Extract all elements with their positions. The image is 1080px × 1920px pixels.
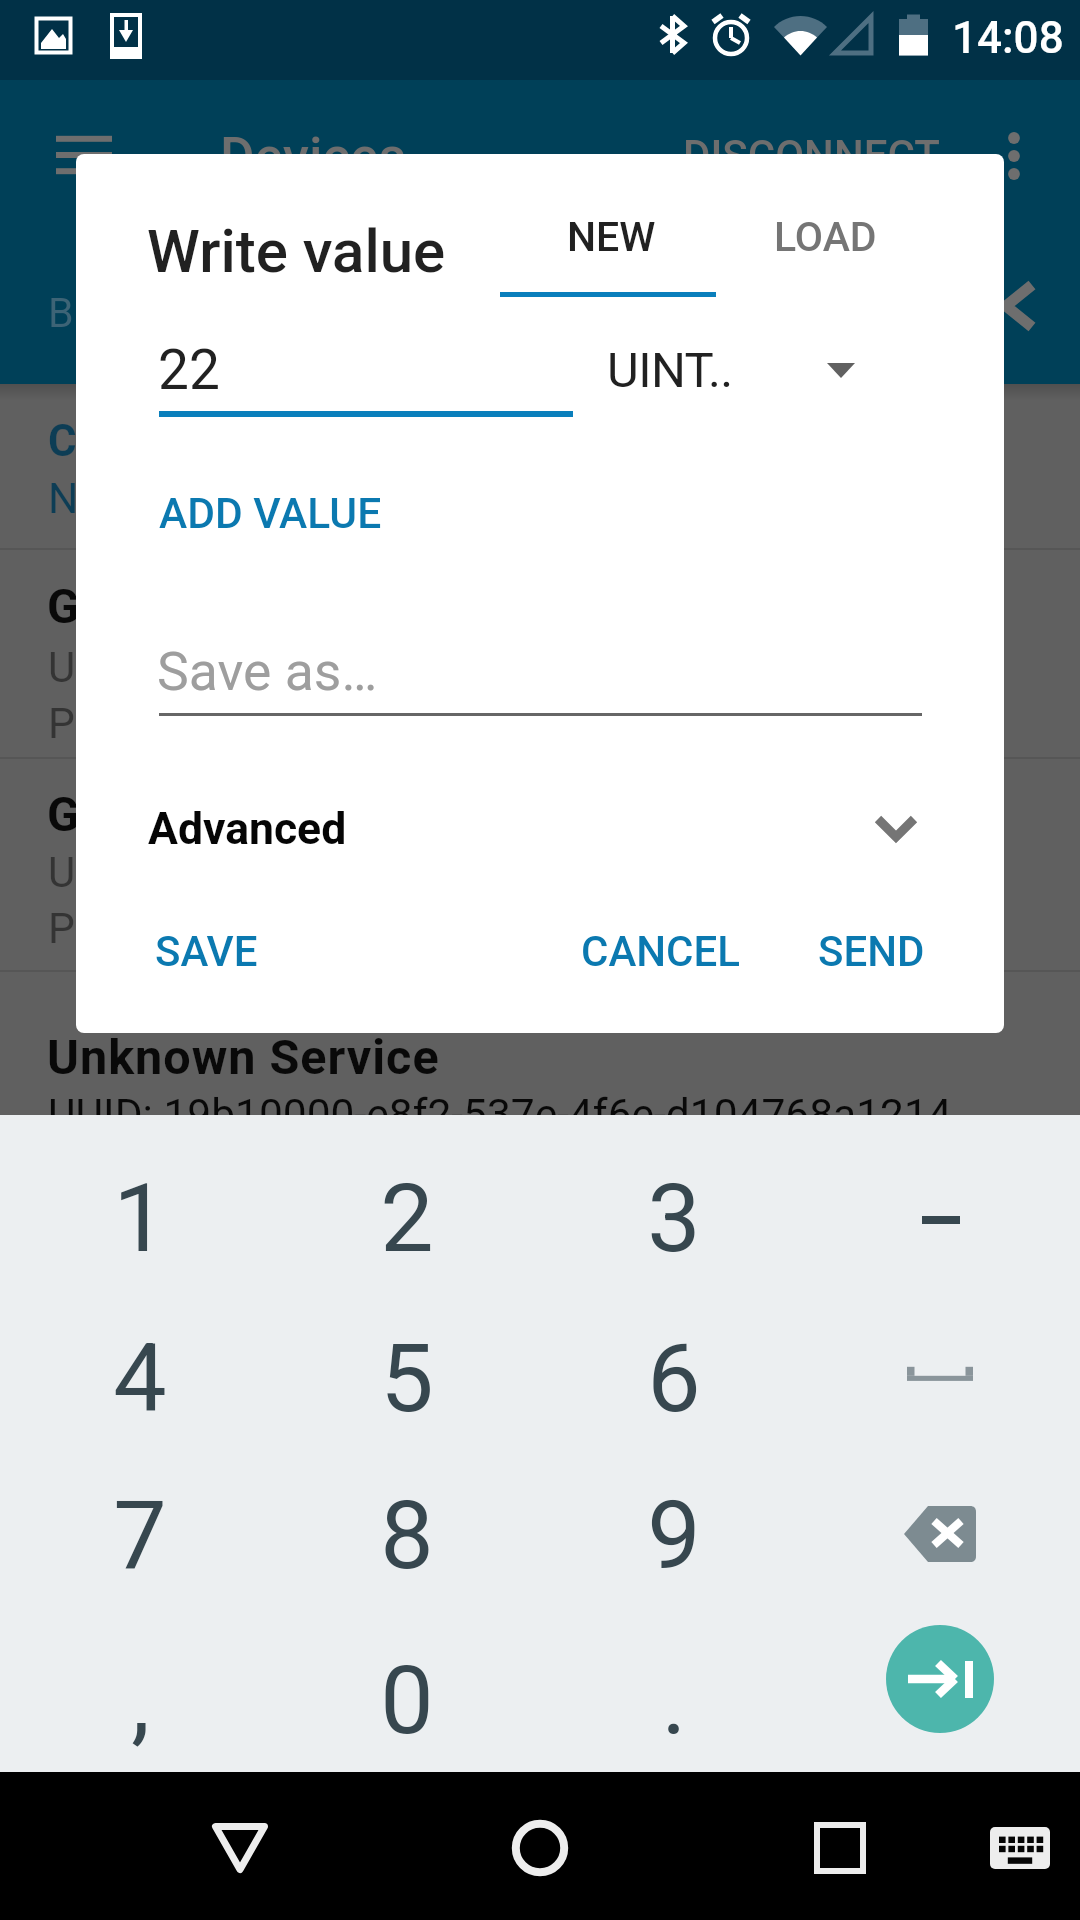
staticText: 9	[647, 1480, 701, 1591]
staticText: 1	[113, 1163, 167, 1274]
button[interactable]: LOAD	[717, 190, 933, 301]
button[interactable]: Generic Access	[0, 0, 349, 56]
button[interactable]: Advanced	[134, 790, 920, 872]
staticText: 0	[380, 1645, 434, 1756]
staticText: Save as…	[157, 640, 378, 703]
staticText: 2	[380, 1163, 434, 1274]
button[interactable]: 6	[604, 1308, 744, 1448]
button[interactable]: Open navigation menu	[28, 108, 140, 220]
button[interactable]: Back	[180, 1788, 300, 1908]
button[interactable]: ADD VALUE	[140, 478, 398, 550]
button[interactable]: Recents	[780, 1788, 900, 1908]
button[interactable]: .	[604, 1630, 744, 1770]
button[interactable]: Generic Attribute	[0, 0, 385, 56]
staticText: UINT..	[607, 342, 733, 399]
button[interactable]: NEW	[500, 190, 716, 297]
button[interactable]: Space	[870, 1304, 1010, 1444]
button[interactable]: Minus	[870, 1148, 1010, 1288]
button[interactable]: Switch keyboard	[960, 1788, 1080, 1908]
staticText: SAVE	[155, 927, 258, 976]
button[interactable]: More options	[986, 108, 1042, 204]
button[interactable]: UINT..	[590, 330, 890, 416]
staticText: LOAD	[774, 213, 877, 261]
button[interactable]: ,	[70, 1630, 210, 1770]
staticText: 6	[647, 1323, 701, 1434]
button[interactable]: 9	[604, 1465, 744, 1605]
staticText: UUID: 19b10000-e8f2-537e-4f6e-d104768a12…	[48, 1090, 952, 1140]
staticText: 22	[158, 338, 220, 402]
button[interactable]: 1	[70, 1148, 210, 1288]
button[interactable]: 7	[70, 1465, 210, 1605]
staticText: CANCEL	[581, 927, 740, 976]
button[interactable]: Custom Characteristic	[0, 0, 455, 51]
staticText: 5	[380, 1323, 434, 1434]
staticText: NEW	[567, 213, 656, 261]
button[interactable]: Backspace	[870, 1463, 1010, 1603]
staticText: PRIMARY SERVICE	[48, 699, 410, 749]
button[interactable]: Home	[480, 1788, 600, 1908]
staticText: Write value	[147, 216, 446, 286]
button[interactable]: 8	[337, 1465, 477, 1605]
staticText: ADD VALUE	[159, 489, 382, 539]
button[interactable]: Unknown Service	[0, 0, 393, 57]
button[interactable]: Save as…	[145, 640, 935, 718]
button[interactable]: 3	[604, 1148, 744, 1288]
button[interactable]: 4	[70, 1308, 210, 1448]
staticText: UUID: 00001801-0000-1000-8000-00805f9b34…	[48, 848, 955, 897]
button[interactable]: Collapse	[995, 278, 1045, 334]
staticText: 4	[113, 1323, 167, 1434]
staticText: NOTIFY, READ, WRITE	[48, 473, 471, 523]
button[interactable]: SAVE	[137, 914, 272, 990]
staticText: .	[661, 1645, 687, 1756]
staticText: Devices	[220, 126, 406, 188]
button[interactable]: 0	[337, 1630, 477, 1770]
button[interactable]: SEND	[800, 914, 939, 990]
staticText: PRIMARY SERVICE	[48, 904, 410, 954]
button[interactable]: CANCEL	[563, 914, 754, 990]
staticText: BLE device	[48, 289, 247, 337]
staticText: 7	[113, 1480, 167, 1591]
staticText: 3	[647, 1163, 701, 1274]
staticText: 14:08	[952, 12, 1064, 64]
staticText: UUID: 00001800-0000-1000-8000-00805f9b34…	[48, 643, 955, 692]
staticText: Advanced	[148, 803, 347, 855]
button[interactable]: 5	[337, 1308, 477, 1448]
staticText: 8	[380, 1480, 434, 1591]
staticText: SEND	[818, 927, 925, 976]
staticText: ,	[131, 1645, 150, 1756]
button[interactable]: Enter	[886, 1625, 994, 1733]
button[interactable]: 2	[337, 1148, 477, 1288]
